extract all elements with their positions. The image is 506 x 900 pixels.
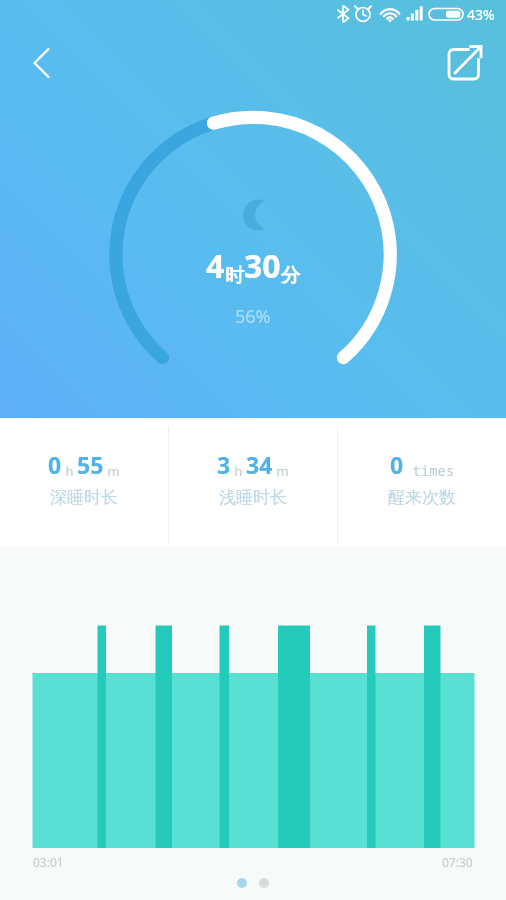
button[interactable]: 3 bbox=[169, 418, 337, 508]
staticText: 醒来次数 bbox=[388, 487, 456, 508]
staticText: 55 bbox=[77, 449, 104, 480]
staticText: 0 bbox=[48, 449, 62, 480]
staticText: times bbox=[404, 461, 455, 480]
staticText: 03:01 bbox=[33, 854, 64, 870]
button[interactable]: Page 2 bbox=[259, 878, 269, 888]
staticText: h bbox=[62, 462, 77, 480]
staticText: 3 bbox=[217, 449, 231, 480]
staticText: 分 bbox=[281, 264, 300, 288]
staticText: 43% bbox=[467, 5, 495, 24]
button[interactable]: 0 bbox=[0, 418, 168, 508]
staticText: 时 bbox=[225, 264, 244, 288]
staticText: m bbox=[104, 462, 120, 480]
button[interactable]: 0 bbox=[338, 418, 506, 508]
staticText: h bbox=[231, 462, 246, 480]
staticText: m bbox=[273, 462, 289, 480]
staticText: 0 bbox=[390, 449, 404, 480]
staticText: 30 bbox=[244, 244, 281, 288]
staticText: 56% bbox=[235, 304, 271, 329]
button[interactable]: Page 1 bbox=[237, 878, 247, 888]
staticText: 07:30 bbox=[442, 854, 473, 870]
button[interactable]: Back bbox=[10, 36, 64, 90]
button[interactable]: Sleep stages chart bbox=[0, 547, 506, 900]
staticText: 浅睡时长 bbox=[219, 487, 287, 508]
staticText: 深睡时长 bbox=[50, 487, 118, 508]
staticText: 34 bbox=[246, 449, 273, 480]
staticText: 4 bbox=[206, 244, 225, 288]
button[interactable]: Share bbox=[438, 38, 490, 90]
